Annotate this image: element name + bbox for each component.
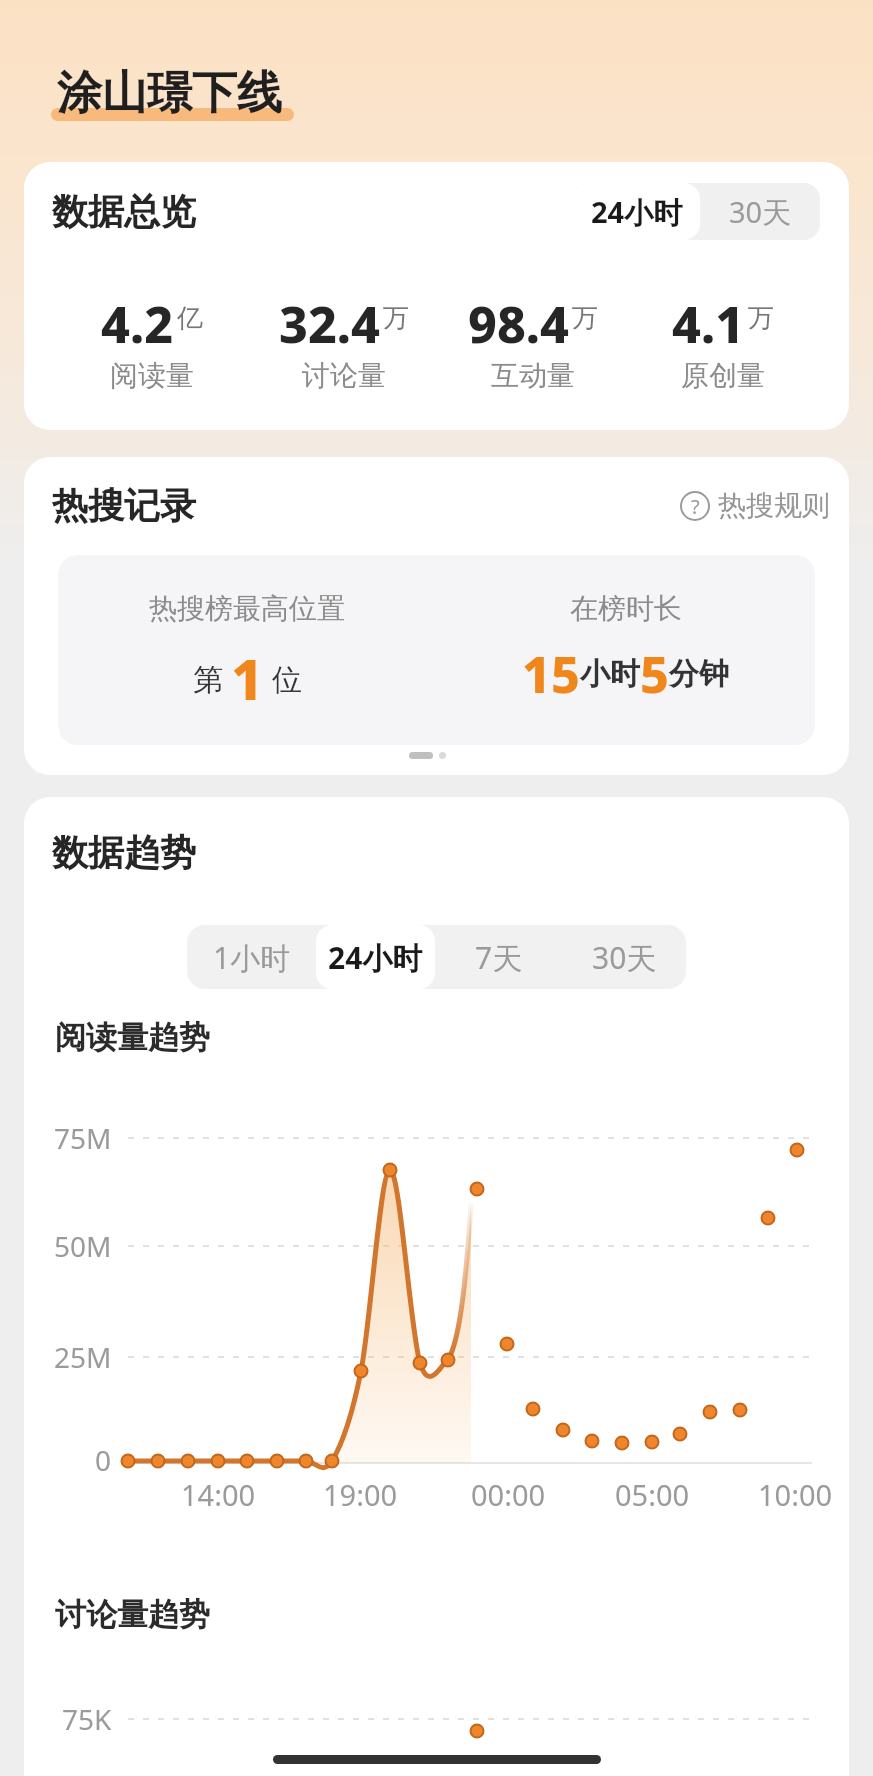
button[interactable]: 24小时 [573,183,700,240]
staticText: 4.2 [101,290,174,358]
staticText: 热搜规则 [718,488,830,523]
staticText: 98.4 [468,290,569,358]
staticText: 数据趋势 [52,830,196,875]
staticText: 00:00 [471,1475,546,1514]
staticText: 万 [572,302,598,335]
staticText: 互动量 [491,358,575,393]
staticText: 热搜记录 [52,483,196,528]
staticText: 7天 [475,937,523,978]
staticText: 位 [264,658,302,699]
button[interactable]: 1小时 [187,925,316,989]
staticText: 75K [62,1700,112,1738]
button[interactable]: ? [680,483,830,528]
staticText: 30天 [729,192,792,232]
staticText: 25M [54,1338,112,1376]
staticText: 万 [383,302,409,335]
staticText: 在榜时长 [570,591,682,626]
staticText: 10:00 [758,1475,833,1514]
staticText: 05:00 [615,1475,690,1514]
staticText: 32.4 [279,290,380,358]
staticText: 数据总览 [52,189,196,234]
staticText: 第 [193,658,231,699]
staticText: 30天 [592,937,657,978]
staticText: 5 [640,640,669,708]
staticText: 亿 [177,302,203,335]
staticText: 原创量 [681,358,765,393]
staticText: 小时 [580,655,640,693]
button[interactable]: 7天 [435,925,563,989]
staticText: 14:00 [181,1475,256,1514]
button[interactable]: 30天 [700,183,820,240]
staticText: 讨论量 [302,358,386,393]
staticText: 阅读量 [110,358,194,393]
staticText: 分钟 [669,655,729,693]
staticText: 热搜榜最高位置 [149,591,345,626]
staticText: 15 [522,640,580,708]
staticText: 24小时 [328,937,423,978]
staticText: 1小时 [213,937,291,978]
staticText: ? [691,493,700,520]
staticText: 24小时 [591,192,683,232]
staticText: 19:00 [323,1475,398,1514]
staticText: 讨论量趋势 [55,1595,210,1634]
button[interactable]: 30天 [563,925,686,989]
staticText: 0 [95,1441,112,1479]
staticText: 涂山璟下线 [57,65,282,122]
staticText: 万 [748,302,774,335]
staticText: 4.1 [672,290,745,358]
staticText: 1 [231,640,264,716]
staticText: 75M [54,1119,112,1157]
staticText: 50M [54,1227,112,1265]
button[interactable]: 24小时 [316,925,435,989]
staticText: 阅读量趋势 [55,1018,210,1057]
